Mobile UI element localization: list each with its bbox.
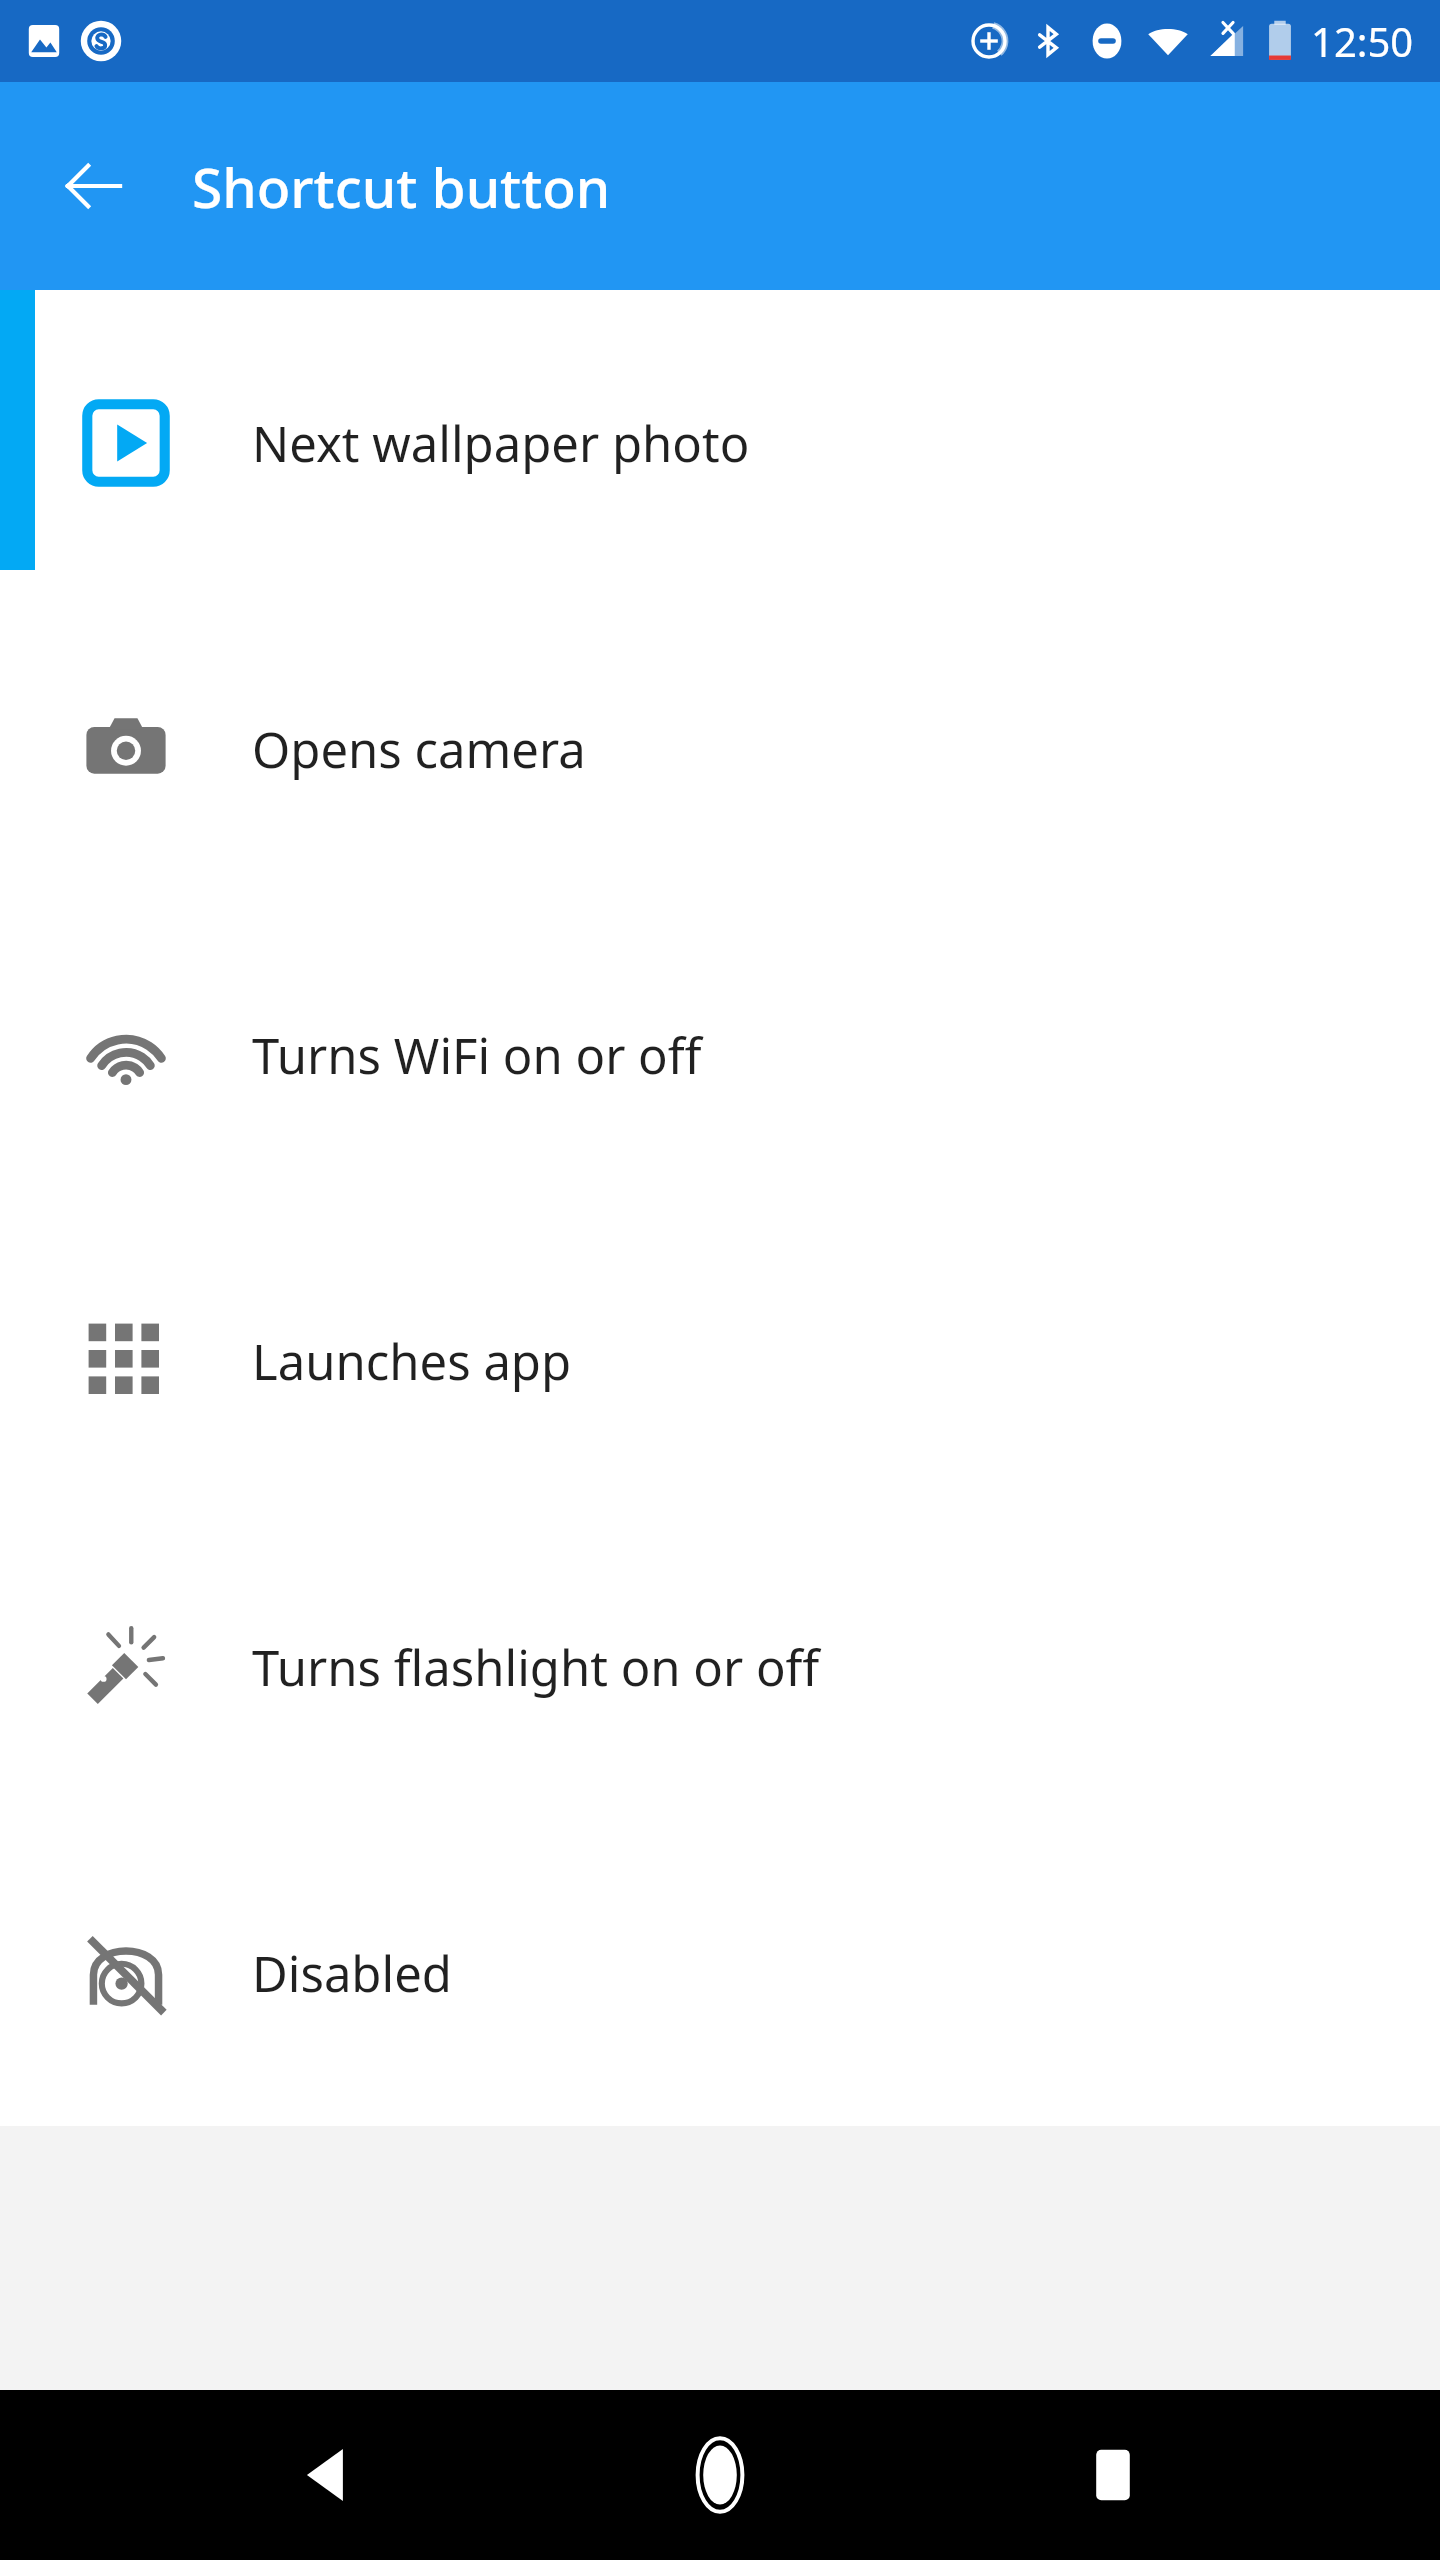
button[interactable]: Turns WiFi on or off <box>0 902 1440 1208</box>
button[interactable]: Turns flashlight on or off <box>0 1514 1440 1820</box>
button[interactable]: Back <box>263 2410 393 2540</box>
button[interactable]: Recents <box>1048 2410 1178 2540</box>
button[interactable]: Disabled <box>0 1820 1440 2126</box>
staticText: 12:50 <box>1311 14 1414 68</box>
staticText: Turns flashlight on or off <box>252 1634 820 1701</box>
button[interactable]: Next wallpaper photo <box>0 290 1440 596</box>
staticText: Shortcut button <box>192 149 611 224</box>
button[interactable]: Opens camera <box>0 596 1440 902</box>
staticText: Launches app <box>252 1328 572 1395</box>
staticText: Disabled <box>252 1940 452 2007</box>
staticText: Turns WiFi on or off <box>252 1022 702 1089</box>
staticText: Next wallpaper photo <box>252 410 750 477</box>
button[interactable]: Back <box>52 144 136 228</box>
button[interactable]: Home <box>655 2410 785 2540</box>
button[interactable]: Launches app <box>0 1208 1440 1514</box>
staticText: Opens camera <box>252 716 586 783</box>
